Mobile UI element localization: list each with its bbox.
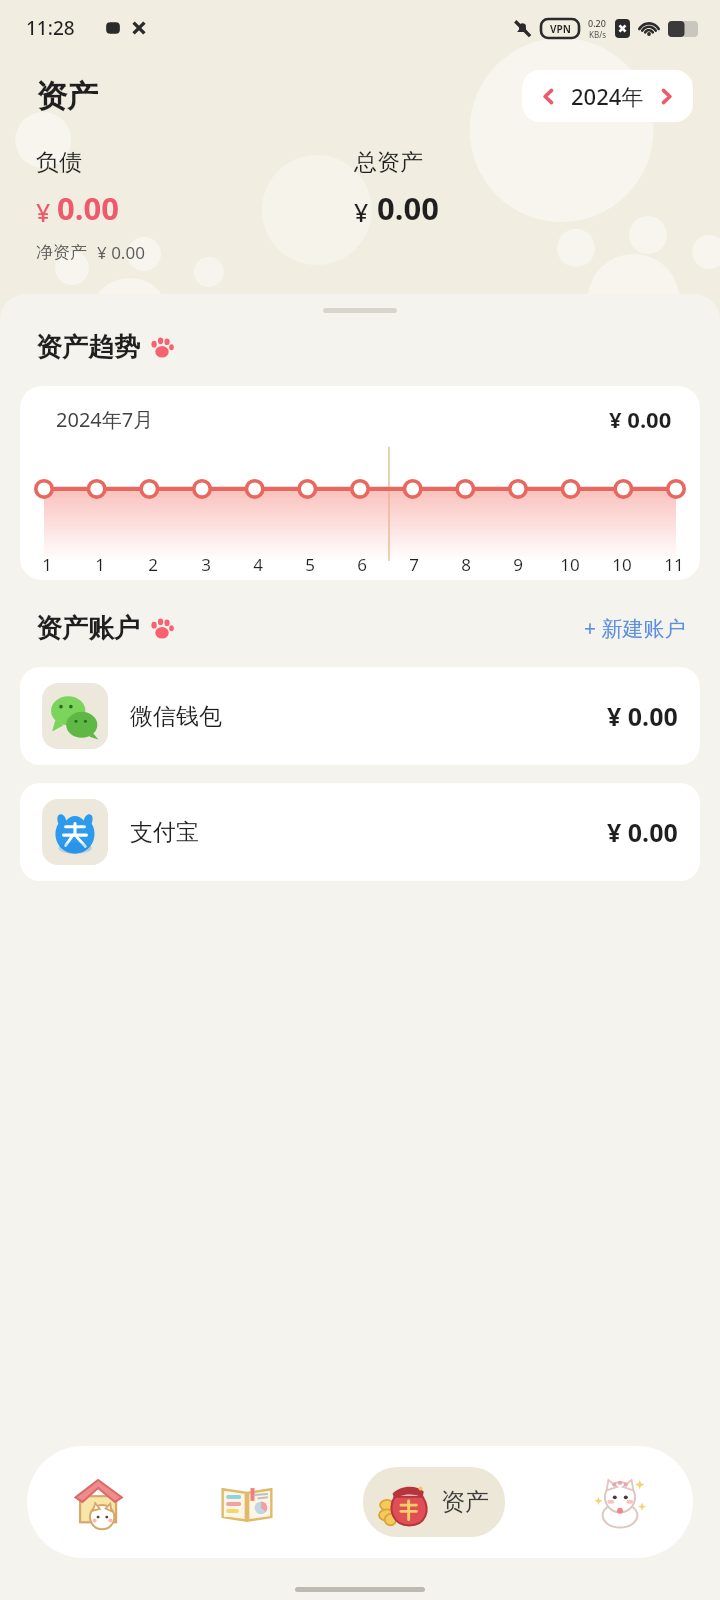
staticText: 1 (42, 553, 52, 576)
staticText: 0.00 (377, 187, 439, 229)
staticText: 负债 (36, 148, 82, 177)
button[interactable]: 资产 (363, 1467, 505, 1537)
button[interactable]: 支付宝 (20, 783, 700, 881)
staticText: 3 (201, 553, 211, 576)
staticText: 0.20 (588, 17, 606, 29)
staticText: 11:28 (26, 15, 75, 41)
staticText: 5 (305, 553, 315, 576)
other: Previous year (540, 88, 557, 105)
staticText: 2024年7月 (56, 406, 154, 433)
staticText: ¥ (36, 195, 51, 229)
other: Next year (658, 88, 675, 105)
staticText: 资产 (441, 1487, 489, 1517)
staticText: 2024年 (571, 81, 644, 111)
staticText: 1 (95, 553, 105, 576)
staticText: 微信钱包 (130, 702, 222, 731)
staticText: ¥ 0.00 (607, 699, 678, 733)
button[interactable]: 2024年7月 (20, 386, 700, 580)
button[interactable]: + 新建账户 (580, 610, 690, 647)
staticText: ¥ 0.00 (607, 815, 678, 849)
button[interactable]: 微信钱包 (20, 667, 700, 765)
button[interactable]: Previous year (522, 70, 693, 122)
staticText: 11 (664, 553, 684, 576)
staticText: 资产 (36, 77, 98, 116)
staticText: KB/s (589, 29, 606, 40)
staticText: 2 (148, 553, 158, 576)
staticText: ¥ 0.00 (609, 404, 672, 434)
staticText: 6 (357, 553, 367, 576)
staticText: VPN (550, 22, 571, 36)
staticText: 8 (461, 553, 471, 576)
staticText: 4 (253, 553, 263, 576)
staticText: 10 (560, 553, 580, 576)
staticText: 总资产 (354, 148, 423, 177)
staticText: 资产趋势 (36, 331, 140, 364)
staticText: 9 (513, 553, 523, 576)
staticText: ¥ (354, 195, 369, 229)
staticText: 0.00 (57, 187, 119, 229)
button[interactable]: Profile (547, 1446, 693, 1558)
button[interactable]: Home (27, 1446, 174, 1558)
staticText: 7 (409, 553, 419, 576)
staticText: 10 (612, 553, 632, 576)
staticText: 支付宝 (130, 818, 199, 847)
staticText: ¥ 0.00 (97, 241, 145, 264)
staticText: 资产账户 (36, 612, 140, 645)
staticText: 净资产 (36, 242, 87, 263)
button[interactable]: Ledger (174, 1446, 320, 1558)
staticText: + 新建账户 (584, 614, 686, 643)
